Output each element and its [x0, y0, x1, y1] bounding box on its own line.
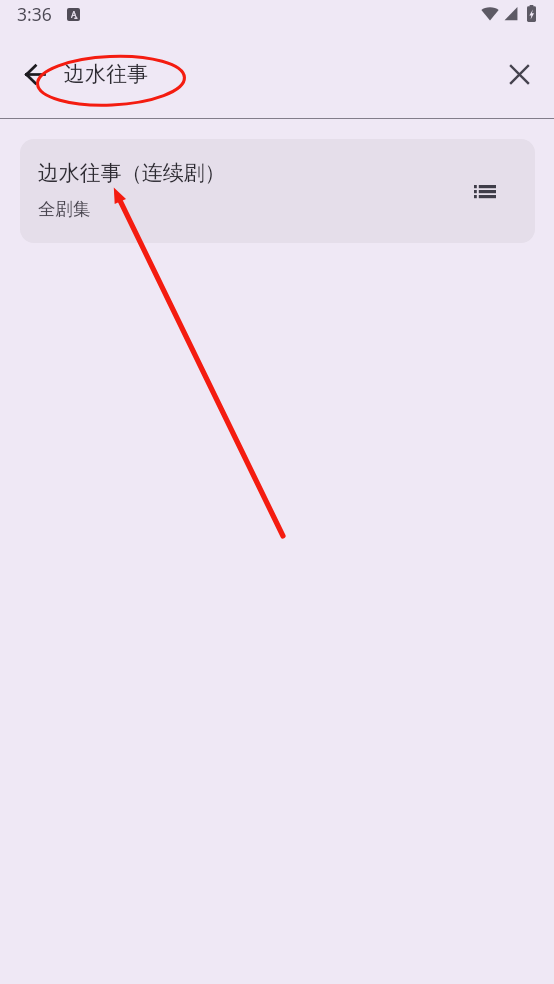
staticText: 3:36 [17, 2, 52, 26]
button[interactable]: 边水往事（连续剧） [20, 139, 535, 243]
staticText: 全剧集 [38, 198, 91, 220]
staticText: 边水往事 [64, 61, 148, 87]
button[interactable]: Back [11, 50, 59, 98]
button[interactable]: Episode list [465, 171, 505, 211]
staticText: A [71, 8, 77, 20]
staticText: 边水往事（连续剧） [38, 160, 226, 186]
button[interactable]: Close [495, 50, 543, 98]
